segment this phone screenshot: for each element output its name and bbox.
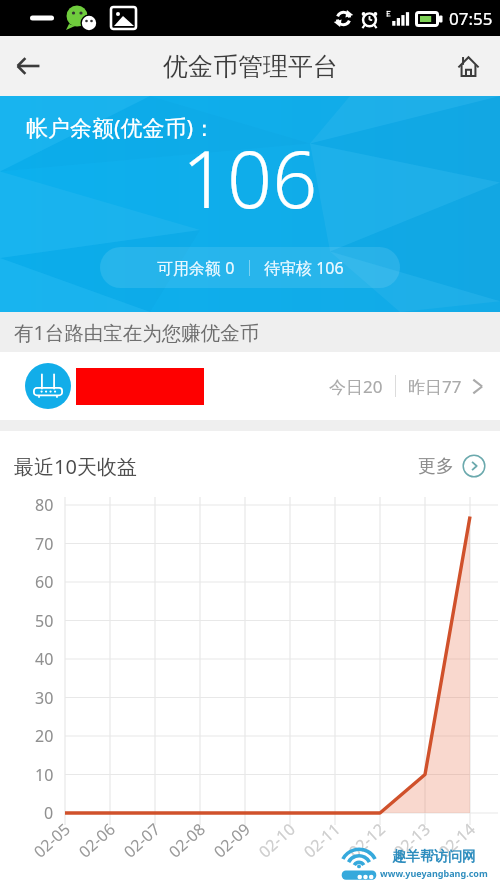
staticText: www.yueyangbang.com (380, 867, 488, 879)
button[interactable]: Back (4, 42, 52, 90)
staticText: 更多 (418, 455, 454, 478)
staticText: 可用余额 0 (157, 257, 235, 279)
button[interactable]: 可用余额 0 (100, 247, 400, 288)
staticText: 最近10天收益 (14, 453, 137, 480)
staticText: 有1台路由宝在为您赚优金币 (14, 319, 260, 346)
staticText: 07:55 (449, 7, 493, 30)
staticText: 待审核 106 (264, 257, 344, 279)
staticText: 今日20 (329, 375, 383, 398)
staticText: 昨日77 (408, 375, 462, 398)
button[interactable]: 今日20 (0, 352, 500, 420)
staticText: 趣羊帮访问网 (392, 848, 476, 866)
staticText: 帐户余额(优金币)： (26, 112, 216, 142)
staticText: 优金币管理平台 (163, 51, 338, 82)
staticText: 106 (182, 124, 318, 232)
button[interactable]: 更多 (418, 454, 486, 478)
button[interactable]: Home (444, 42, 492, 90)
